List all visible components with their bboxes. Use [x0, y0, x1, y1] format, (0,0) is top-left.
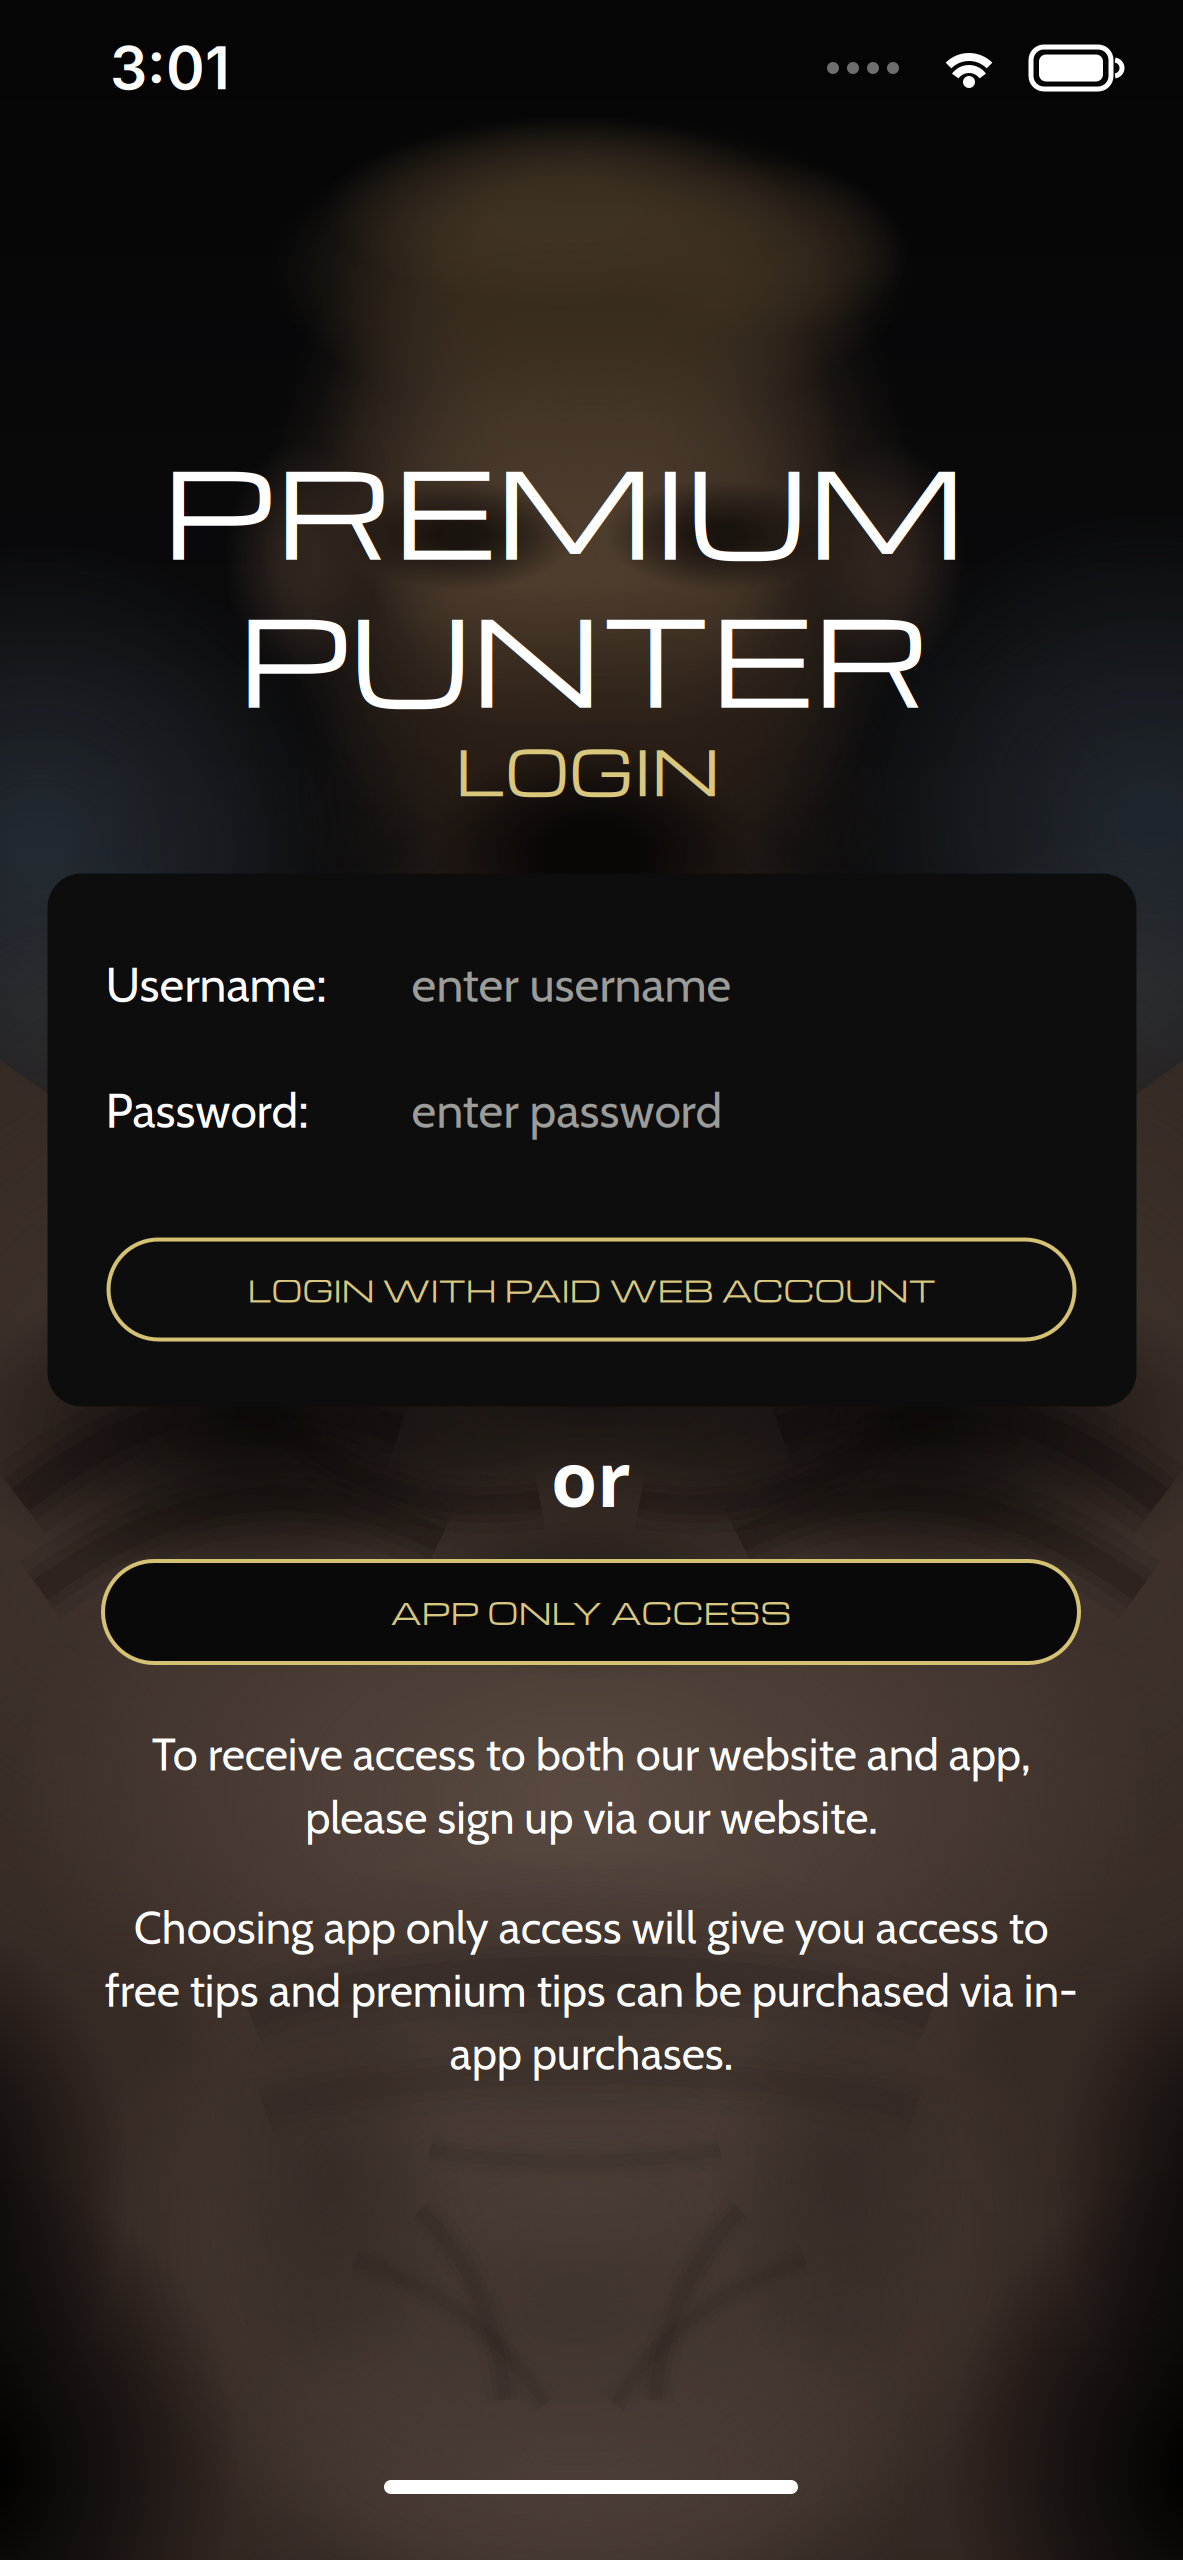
- staticText: LOGIN WITH PAID WEB ACCOUNT: [247, 1269, 935, 1310]
- staticText: or: [551, 1427, 631, 1529]
- staticText: PREMIUM: [162, 425, 966, 590]
- staticText: Username:: [105, 955, 326, 1014]
- staticText: enter username: [411, 955, 731, 1014]
- staticText: PUNTER: [237, 573, 930, 738]
- staticText: 3:01: [110, 32, 230, 103]
- button[interactable]: LOGIN WITH PAID WEB ACCOUNT: [108, 1239, 1074, 1339]
- button[interactable]: APP ONLY ACCESS: [103, 1561, 1079, 1663]
- staticText: Choosing app only access will give you a…: [104, 1900, 1077, 2081]
- staticText: APP ONLY ACCESS: [390, 1591, 791, 1633]
- staticText: Password:: [105, 1081, 308, 1140]
- staticText: LOGIN: [455, 725, 721, 813]
- staticText: enter password: [411, 1081, 722, 1140]
- staticText: To receive access to both our website an…: [151, 1727, 1030, 1845]
